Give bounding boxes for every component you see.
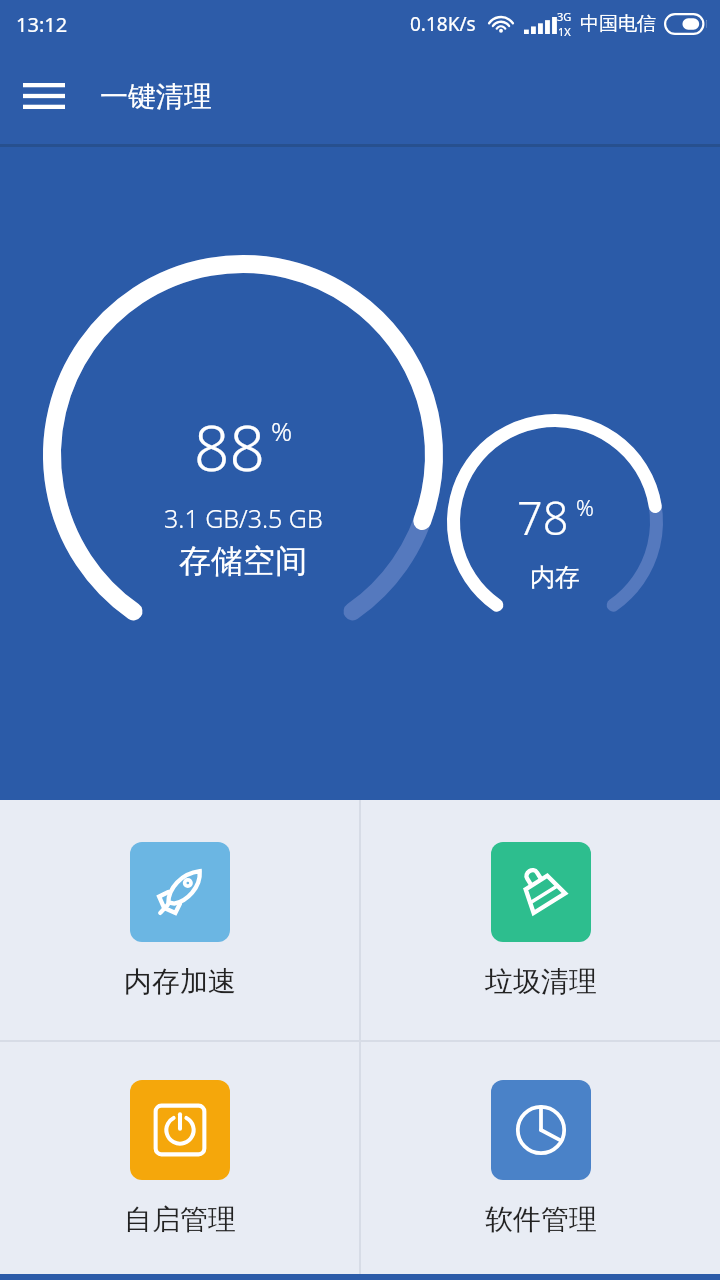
staticText: 中国电信 bbox=[580, 12, 656, 36]
staticText: 78 bbox=[517, 487, 569, 548]
staticText: 软件管理 bbox=[485, 1202, 597, 1237]
staticText: % bbox=[271, 413, 293, 448]
button[interactable]: Menu bbox=[16, 68, 72, 124]
button[interactable]: 垃圾清理 bbox=[361, 800, 720, 1040]
staticText: 0.18K/s bbox=[410, 11, 476, 37]
staticText: 内存 bbox=[530, 562, 580, 593]
staticText: 内存加速 bbox=[124, 964, 236, 999]
button[interactable]: 软件管理 bbox=[361, 1042, 720, 1274]
staticText: 垃圾清理 bbox=[485, 964, 597, 999]
staticText: 存储空间 bbox=[179, 541, 307, 581]
button[interactable]: 内存加速 bbox=[0, 800, 359, 1040]
staticText: 自启管理 bbox=[124, 1202, 236, 1237]
staticText: 1X bbox=[558, 24, 571, 39]
staticText: 3.1 GB/3.5 GB bbox=[164, 501, 323, 535]
staticText: 一键清理 bbox=[100, 79, 212, 114]
staticText: 88 bbox=[194, 405, 265, 489]
button[interactable]: 自启管理 bbox=[0, 1042, 359, 1274]
staticText: 13:12 bbox=[16, 11, 68, 38]
staticText: % bbox=[576, 492, 594, 522]
staticText: 3G bbox=[557, 9, 572, 24]
